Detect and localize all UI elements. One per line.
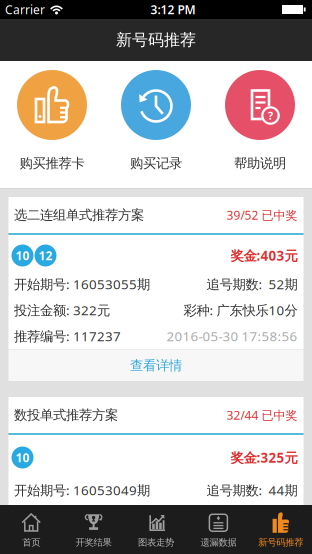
staticText: ? bbox=[268, 108, 273, 123]
button[interactable]: 购买推荐卡 bbox=[17, 70, 87, 171]
staticText: 32/44 已中奖 bbox=[226, 407, 297, 423]
staticText: 购买推荐卡 bbox=[19, 155, 84, 171]
staticText: 开始期号: 16053049期 bbox=[14, 481, 150, 499]
staticText: 帮助说明 bbox=[234, 155, 286, 171]
button[interactable]: ? bbox=[225, 70, 295, 171]
staticText: 购买记录 bbox=[130, 155, 182, 171]
staticText: 新号码推荐 bbox=[258, 537, 303, 548]
staticText: 推荐编号: 117237 bbox=[14, 327, 121, 345]
staticText: 10 bbox=[15, 449, 29, 465]
button[interactable]: 购买记录 bbox=[121, 70, 191, 171]
staticText: 奖金:325元 bbox=[230, 449, 297, 466]
staticText: 2016-05-30 17:58:56 bbox=[166, 327, 297, 345]
button[interactable]: 开奖结果 bbox=[62, 505, 125, 554]
button[interactable]: 遗漏数据 bbox=[187, 505, 250, 554]
staticText: 12 bbox=[38, 247, 52, 263]
staticText: 首页 bbox=[22, 537, 40, 548]
button[interactable]: 新号码推荐 bbox=[250, 505, 312, 554]
staticText: 开始期号: 16053055期 bbox=[14, 275, 150, 293]
staticText: 投注金额: 322元 bbox=[14, 301, 110, 319]
staticText: 奖金:403元 bbox=[230, 247, 297, 264]
staticText: 新号码推荐 bbox=[116, 30, 196, 50]
staticText: 遗漏数据 bbox=[200, 537, 236, 548]
button[interactable]: 查看详情 bbox=[8, 350, 303, 381]
staticText: Carrier bbox=[5, 1, 45, 17]
staticText: 开奖结果 bbox=[76, 537, 112, 548]
staticText: 3:12 PM bbox=[150, 1, 195, 17]
button[interactable]: 图表走势 bbox=[125, 505, 187, 554]
staticText: 查看详情 bbox=[130, 357, 182, 374]
staticText: 图表走势 bbox=[138, 537, 174, 548]
staticText: 39/52 已中奖 bbox=[226, 207, 297, 223]
staticText: 选二连组单式推荐方案 bbox=[14, 207, 144, 223]
staticText: 追号期数: 52期 bbox=[206, 275, 297, 293]
staticText: 10 bbox=[15, 247, 29, 263]
staticText: 追号期数: 44期 bbox=[206, 481, 297, 499]
staticText: 彩种: 广东快乐10分 bbox=[183, 301, 297, 319]
staticText: 数投单式推荐方案 bbox=[14, 407, 118, 423]
button[interactable]: 首页 bbox=[0, 505, 62, 554]
